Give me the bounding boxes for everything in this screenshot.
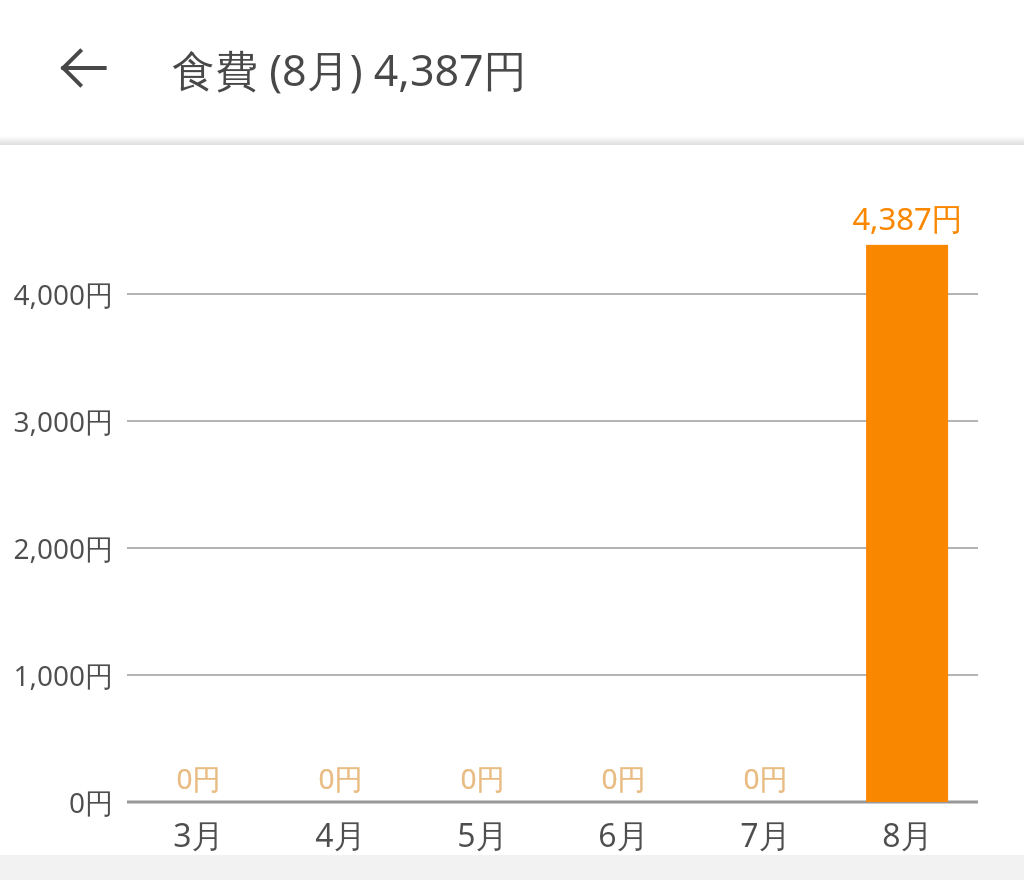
staticText: 4,387円 xyxy=(852,197,963,239)
button[interactable]: 5月 xyxy=(411,813,553,857)
staticText: 3月 xyxy=(173,813,224,857)
staticText: 4,000円 xyxy=(0,275,113,313)
staticText: 7月 xyxy=(740,813,791,857)
staticText: 5月 xyxy=(457,813,508,857)
button[interactable]: 3月 xyxy=(127,813,269,857)
staticText: 0円 xyxy=(743,759,788,797)
staticText: 8月 xyxy=(882,813,933,857)
staticText: 0円 xyxy=(460,759,505,797)
button[interactable]: 8月 xyxy=(836,813,978,857)
staticText: 0円 xyxy=(601,759,646,797)
staticText: 6月 xyxy=(598,813,649,857)
staticText: 3,000円 xyxy=(0,402,113,440)
button[interactable]: 7月 xyxy=(694,813,836,857)
button[interactable]: 4月 xyxy=(269,813,411,857)
staticText: 0円 xyxy=(176,759,221,797)
staticText: 1,000円 xyxy=(0,656,113,694)
staticText: 0円 xyxy=(318,759,363,797)
staticText: 食費 (8月) 4,387円 xyxy=(172,40,527,99)
staticText: 2,000円 xyxy=(0,529,113,567)
button[interactable]: 6月 xyxy=(552,813,694,857)
staticText: 0円 xyxy=(0,783,113,821)
button[interactable]: Back xyxy=(40,24,128,112)
staticText: 4月 xyxy=(315,813,366,857)
